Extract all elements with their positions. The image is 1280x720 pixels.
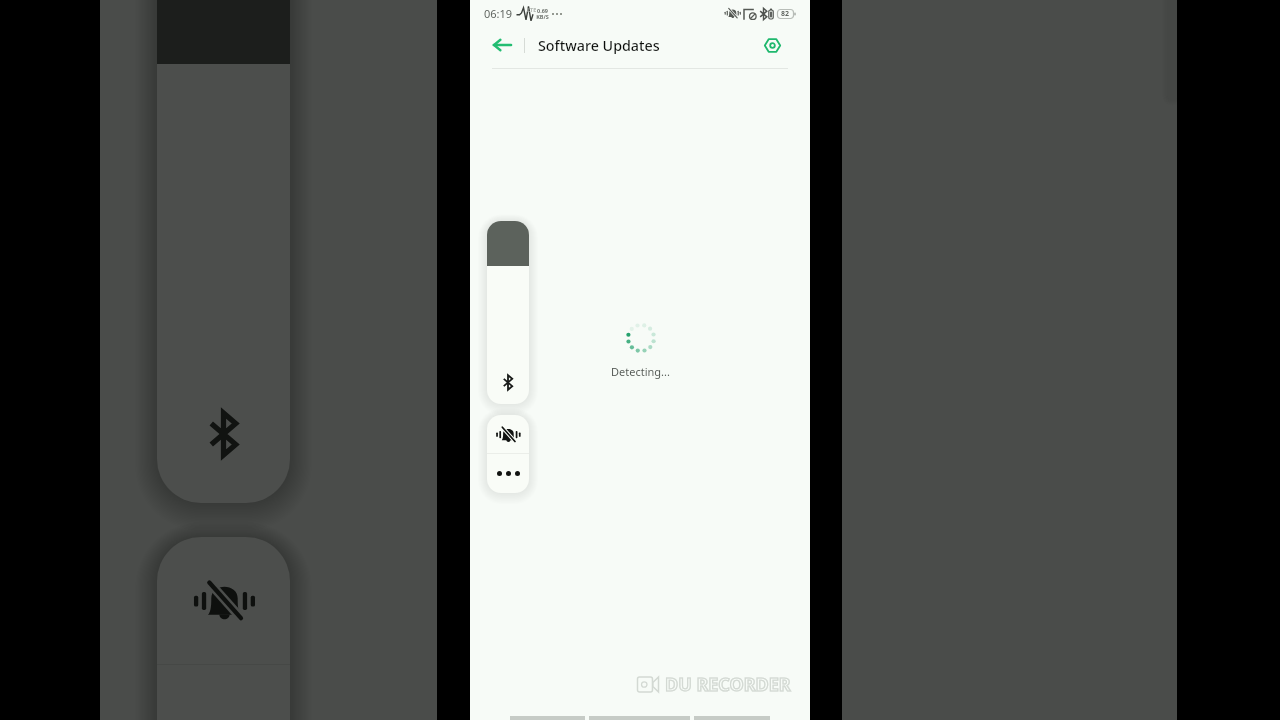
button[interactable]: Back	[486, 29, 518, 61]
button[interactable]: Settings	[758, 31, 786, 59]
staticText: Detecting...	[611, 364, 670, 379]
button[interactable]: Volume slider	[487, 221, 529, 404]
staticText: Software Updates	[538, 36, 660, 55]
staticText: DU RECORDER	[665, 672, 791, 697]
staticText: 82	[781, 9, 790, 19]
button[interactable]: Ringer mode	[487, 415, 529, 453]
button[interactable]: More volume options	[487, 454, 529, 493]
staticText: 06:19	[484, 6, 513, 21]
staticText: LTE	[527, 6, 537, 13]
staticText: 0.69 KB/S	[536, 7, 549, 20]
